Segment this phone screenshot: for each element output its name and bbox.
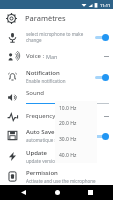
button[interactable]: Toggle (95, 132, 109, 140)
button[interactable]: Paramètres (0, 9, 113, 27)
staticText: 30.0 Hz (59, 136, 77, 143)
staticText: Notification (26, 69, 60, 77)
staticText: update version (26, 158, 58, 164)
staticText: 40.0 Hz (59, 152, 77, 159)
staticText: select microphone to make (26, 31, 84, 37)
button[interactable]: Auto Save (0, 125, 113, 146)
staticText: Permission (26, 169, 58, 177)
button[interactable]: 20.0 Hz (55, 116, 97, 131)
button[interactable]: Permission (0, 167, 113, 185)
button[interactable]: Recents (80, 185, 100, 200)
button[interactable]: Sound (0, 87, 113, 107)
button[interactable]: Toggle (95, 73, 109, 81)
button[interactable]: Notification (0, 65, 113, 87)
staticText: 10.0 Hz (59, 105, 77, 112)
staticText: change (26, 37, 42, 43)
button[interactable]: Update (0, 146, 113, 167)
staticText: Sound (26, 89, 45, 97)
button[interactable]: select microphone to make (0, 27, 113, 47)
staticText: Activate and use the microphone (26, 178, 96, 184)
button[interactable]: Voice : (0, 47, 113, 65)
button[interactable]: 40.0 Hz (55, 147, 97, 163)
staticText: Voice : (26, 52, 46, 60)
button[interactable]: 30.0 Hz (55, 131, 97, 147)
button[interactable]: Home (47, 185, 67, 200)
staticText: Paramètres (25, 13, 66, 23)
staticText: Man (46, 53, 58, 60)
button[interactable]: Frequency : (0, 107, 113, 125)
staticText: Auto Save (26, 128, 55, 136)
staticText: 11:11 (100, 3, 111, 8)
staticText: automatique sa (26, 137, 60, 143)
staticText: Enable notification (26, 78, 66, 84)
button[interactable]: 10.0 Hz (55, 101, 97, 116)
staticText: 20.0 Hz (59, 120, 77, 127)
button[interactable]: Toggle (95, 33, 109, 41)
staticText: Update (26, 149, 48, 157)
button[interactable]: Back (13, 185, 33, 200)
staticText: Frequency : (26, 112, 59, 120)
